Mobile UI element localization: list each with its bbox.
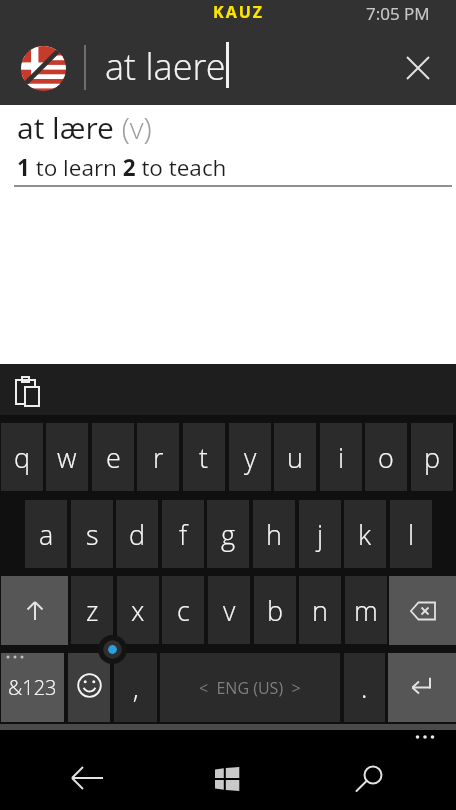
staticText: e	[106, 439, 121, 476]
staticText: u	[287, 439, 303, 476]
button[interactable]: o	[365, 423, 407, 491]
button[interactable]	[68, 653, 110, 722]
button[interactable]: l	[390, 500, 432, 568]
button[interactable]	[388, 653, 456, 722]
button[interactable]: r	[137, 423, 179, 491]
button[interactable]	[1, 576, 68, 645]
staticText: at laere	[105, 42, 226, 88]
button[interactable]: .	[344, 653, 385, 722]
staticText: &123	[8, 674, 57, 701]
button[interactable]: z	[71, 576, 113, 644]
staticText: .	[361, 669, 368, 706]
staticText: n	[312, 592, 328, 629]
button[interactable]: s	[71, 500, 113, 568]
staticText: z	[86, 592, 99, 629]
button[interactable]: k	[344, 500, 386, 568]
button[interactable]	[205, 757, 249, 801]
button[interactable]: j	[299, 500, 341, 568]
staticText: q	[14, 439, 31, 476]
button[interactable]	[16, 41, 70, 95]
button[interactable]: v	[208, 576, 250, 644]
staticText: l	[408, 516, 415, 553]
button[interactable]	[350, 760, 394, 804]
staticText: a	[39, 516, 54, 553]
staticText: s	[86, 516, 99, 553]
button[interactable]: m	[345, 576, 387, 644]
staticText: o	[378, 439, 394, 476]
staticText: 7:05 PM	[366, 2, 430, 25]
staticText: b	[267, 592, 284, 629]
staticText: t	[199, 439, 209, 476]
staticText: < ENG (US) >	[199, 677, 301, 699]
button[interactable]: w	[46, 423, 88, 491]
button[interactable]: i	[320, 423, 362, 491]
button[interactable]: f	[162, 500, 204, 568]
button[interactable]: n	[299, 576, 341, 644]
staticText: m	[354, 592, 378, 629]
button[interactable]: h	[253, 500, 295, 568]
button[interactable]	[65, 756, 109, 800]
staticText: v	[223, 592, 236, 629]
button[interactable]: c	[162, 576, 204, 644]
staticText: k	[358, 516, 372, 553]
button[interactable]: u	[274, 423, 316, 491]
staticText: c	[177, 592, 190, 629]
staticText: j	[317, 516, 324, 553]
staticText: w	[57, 439, 77, 476]
button[interactable]: &123	[1, 653, 64, 722]
button[interactable]: y	[229, 423, 271, 491]
button[interactable]	[389, 576, 456, 645]
button[interactable]: d	[116, 500, 158, 568]
button[interactable]: t	[183, 423, 225, 491]
button[interactable]: x	[117, 576, 159, 644]
staticText: ,	[133, 669, 139, 706]
staticText: h	[266, 516, 282, 553]
button[interactable]: g	[207, 500, 249, 568]
button[interactable]	[6, 368, 50, 412]
button[interactable]: a	[25, 500, 67, 568]
staticText: y	[244, 439, 257, 476]
button[interactable]: e	[92, 423, 134, 491]
button[interactable]: ,	[114, 653, 157, 722]
staticText: i	[338, 439, 345, 476]
staticText: r	[153, 439, 164, 476]
staticText: f	[179, 516, 188, 553]
staticText: KAUZ	[213, 1, 265, 23]
staticText: 1 to learn 2 to teach	[17, 152, 227, 183]
button[interactable]: < ENG (US) >	[160, 653, 340, 722]
staticText: d	[129, 516, 146, 553]
staticText: p	[424, 439, 441, 476]
button[interactable]	[396, 46, 440, 90]
button[interactable]: b	[254, 576, 296, 644]
staticText: x	[131, 592, 145, 629]
button[interactable]: p	[411, 423, 453, 491]
staticText: at lære (v)	[17, 107, 152, 148]
button[interactable]: q	[1, 423, 43, 491]
staticText: g	[221, 516, 236, 553]
